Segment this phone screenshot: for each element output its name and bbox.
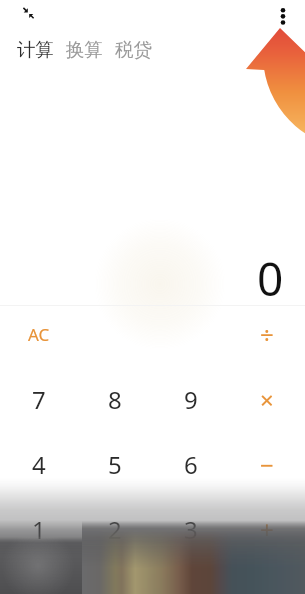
- staticText: 税贷: [115, 38, 152, 61]
- button[interactable]: AC: [0, 302, 77, 367]
- staticText: 0: [257, 247, 284, 310]
- staticText: −: [260, 448, 274, 481]
- button[interactable]: +: [229, 497, 305, 562]
- button[interactable]: 6: [153, 432, 229, 497]
- staticText: 9: [184, 383, 198, 416]
- button[interactable]: [153, 302, 229, 367]
- staticText: 6: [184, 448, 198, 481]
- button[interactable]: 4: [0, 432, 77, 497]
- button[interactable]: Collapse: [4, 3, 42, 41]
- button[interactable]: [77, 302, 153, 367]
- button[interactable]: 1: [0, 497, 77, 562]
- staticText: 8: [108, 383, 122, 416]
- staticText: ×: [260, 383, 274, 416]
- button[interactable]: 7: [0, 367, 77, 432]
- staticText: 3: [184, 513, 198, 546]
- staticText: 换算: [66, 38, 103, 61]
- staticText: +: [260, 513, 274, 546]
- button[interactable]: 税贷: [111, 34, 156, 65]
- staticText: ÷: [260, 318, 274, 351]
- button[interactable]: 3: [153, 497, 229, 562]
- staticText: 7: [32, 383, 46, 416]
- staticText: 1: [32, 513, 46, 546]
- staticText: 2: [108, 513, 122, 546]
- staticText: 5: [108, 448, 122, 481]
- button[interactable]: More options: [266, 0, 300, 33]
- button[interactable]: −: [229, 432, 305, 497]
- button[interactable]: 换算: [62, 34, 107, 65]
- button[interactable]: ×: [229, 367, 305, 432]
- button[interactable]: 9: [153, 367, 229, 432]
- button[interactable]: 计算: [13, 34, 58, 65]
- staticText: 4: [32, 448, 46, 481]
- button[interactable]: 5: [77, 432, 153, 497]
- button[interactable]: ÷: [229, 302, 305, 367]
- button[interactable]: 2: [77, 497, 153, 562]
- button[interactable]: 8: [77, 367, 153, 432]
- staticText: 计算: [17, 38, 54, 61]
- staticText: AC: [28, 323, 50, 346]
